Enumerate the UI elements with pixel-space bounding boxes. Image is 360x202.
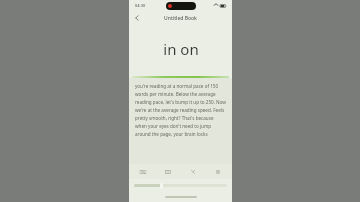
button[interactable]: Playback position [129,179,232,192]
staticText: you're reading at a normal pace of 150 w… [135,83,226,137]
button[interactable]: Pause [212,166,224,178]
button[interactable]: Reading speed [162,166,174,178]
staticText: 04:30 [135,3,146,8]
button[interactable]: Bookmark [187,166,199,178]
staticText: in on [163,39,199,59]
staticText: Untitled Book [164,15,197,22]
button[interactable]: Settings [137,166,149,178]
button[interactable]: Back [131,12,143,24]
